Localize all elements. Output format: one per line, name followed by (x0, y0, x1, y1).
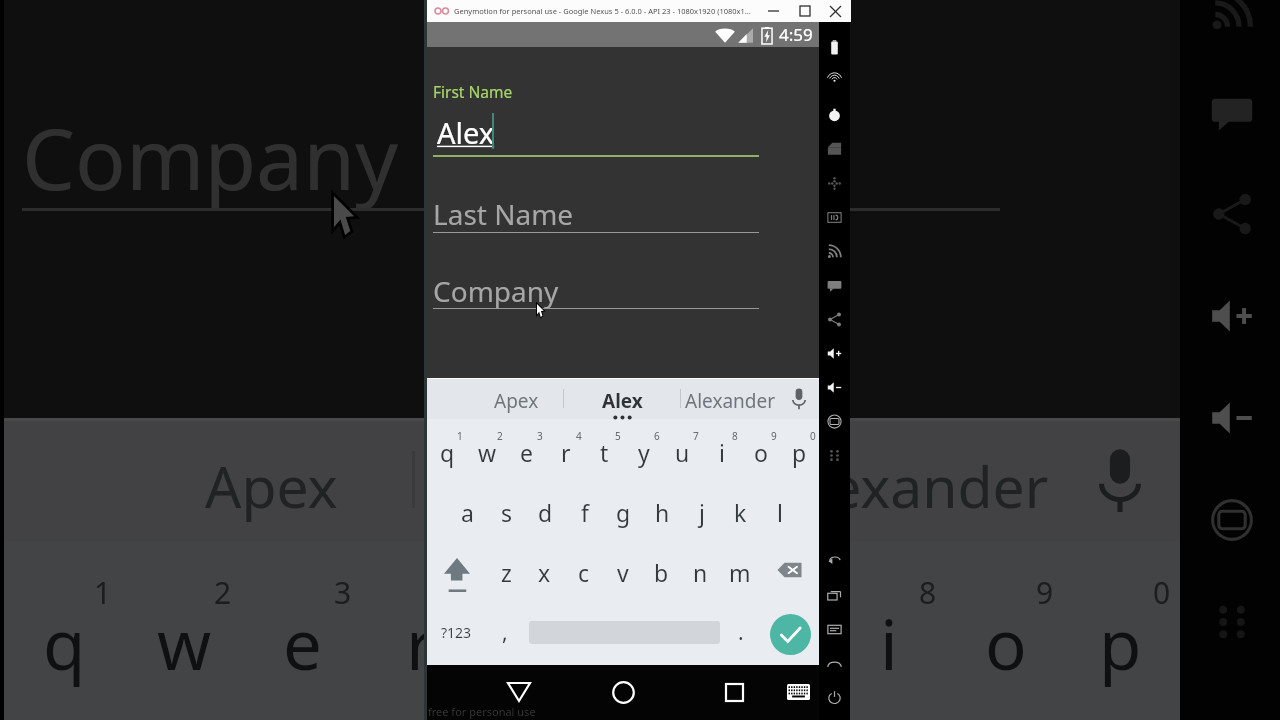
staticText: k (734, 497, 747, 528)
button[interactable]: 7 (712, 541, 829, 720)
button[interactable]: Voice input (779, 378, 819, 419)
button[interactable]: 4 (546, 419, 585, 479)
button[interactable]: GPS (819, 64, 850, 98)
button[interactable]: NET (819, 234, 850, 268)
staticText: c (578, 557, 590, 588)
button[interactable]: 7 (663, 419, 702, 479)
button[interactable]: 5 (478, 541, 595, 720)
staticText: 6 (685, 571, 703, 613)
button[interactable]: 9 (741, 419, 780, 479)
staticText: m (729, 557, 751, 588)
staticText: Company (433, 272, 559, 310)
button[interactable]: RECENT (819, 578, 850, 612)
staticText: p (1099, 595, 1144, 688)
staticText: y (637, 595, 673, 688)
button[interactable]: PIX (819, 438, 850, 472)
button[interactable]: ROTATE (819, 404, 850, 438)
button[interactable]: SMS (819, 268, 850, 302)
button[interactable]: SHARE (819, 302, 850, 336)
button[interactable]: 0 (1063, 541, 1180, 720)
staticText: 0 (810, 429, 816, 443)
button[interactable]: 2 (124, 541, 244, 720)
staticText: i (880, 595, 898, 688)
button[interactable]: l (760, 479, 799, 539)
button[interactable]: Enter (770, 614, 811, 655)
button[interactable]: f (565, 479, 604, 539)
button[interactable]: Show keyboard (781, 665, 815, 719)
button[interactable]: n (681, 539, 720, 599)
button[interactable]: 1 (4, 541, 124, 720)
button[interactable]: c (564, 539, 603, 599)
staticText: 4 (451, 571, 469, 613)
button[interactable]: 6 (595, 541, 712, 720)
button[interactable]: VOLDN (819, 370, 850, 404)
button[interactable]: Backspace (759, 539, 819, 599)
button[interactable]: Back (502, 665, 536, 719)
button[interactable]: k (721, 479, 760, 539)
button[interactable]: Minimize (758, 0, 789, 22)
button[interactable]: 1 (427, 419, 467, 479)
button[interactable]: Alex (563, 378, 680, 419)
button[interactable]: DISK (819, 132, 850, 166)
button[interactable]: b (642, 539, 681, 599)
button[interactable]: ID (819, 200, 850, 234)
button[interactable]: 8 (702, 419, 741, 479)
staticText: b (654, 557, 669, 588)
button[interactable]: 3 (244, 541, 361, 720)
button[interactable]: z (487, 539, 525, 599)
button[interactable]: d (526, 479, 565, 539)
button[interactable]: Recents (717, 665, 751, 719)
button[interactable]: x (525, 539, 564, 599)
button[interactable]: a (447, 479, 487, 539)
button[interactable]: Alexander (763, 418, 1090, 541)
button[interactable]: 4 (361, 541, 478, 720)
button[interactable]: VOLUP (819, 336, 850, 370)
button[interactable]: 0 (780, 419, 819, 479)
staticText: Alex (529, 448, 652, 526)
staticText: d (538, 497, 553, 528)
staticText: Company (22, 100, 400, 214)
button[interactable]: 3 (507, 419, 546, 479)
button[interactable]: 2 (467, 419, 507, 479)
button[interactable]: Space (525, 599, 724, 665)
staticText: 7 (802, 571, 820, 613)
staticText: 2 (214, 571, 232, 613)
button[interactable]: BATTERY (819, 30, 850, 64)
button[interactable]: Voice input (1060, 418, 1180, 541)
button[interactable]: Apex (4, 418, 412, 541)
button[interactable]: CAM (819, 98, 850, 132)
staticText: Genymotion for personal use - Google Nex… (454, 6, 751, 16)
staticText: t (600, 437, 609, 468)
button[interactable]: POWER (819, 680, 850, 714)
button[interactable]: Alex (412, 418, 763, 541)
button[interactable]: 6 (624, 419, 663, 479)
button[interactable]: . (724, 599, 757, 665)
button[interactable]: Apex (427, 378, 563, 419)
button[interactable]: Alexander (680, 378, 789, 419)
button[interactable]: Shift (427, 539, 487, 599)
staticText: Apex (494, 388, 539, 414)
staticText: Apex (205, 448, 340, 526)
button[interactable]: g (604, 479, 643, 539)
button[interactable]: s (487, 479, 526, 539)
button[interactable]: HOME (819, 646, 850, 680)
button[interactable]: Close (820, 0, 851, 22)
button[interactable]: MENU (819, 612, 850, 646)
button[interactable]: v (603, 539, 642, 599)
staticText: w (157, 595, 214, 688)
staticText: First Name (433, 81, 513, 102)
staticText: 5 (568, 571, 586, 613)
button[interactable]: j (682, 479, 721, 539)
button[interactable]: m (720, 539, 759, 599)
button[interactable]: 8 (829, 541, 946, 720)
button[interactable]: Maximize (789, 0, 820, 22)
button[interactable]: 5 (585, 419, 624, 479)
button[interactable]: DPAD (819, 166, 850, 200)
staticText: Alex (437, 113, 495, 152)
button[interactable]: ?123 (427, 599, 485, 665)
button[interactable]: BACK (819, 544, 850, 578)
button[interactable]: , (485, 599, 525, 665)
button[interactable]: h (643, 479, 682, 539)
button[interactable]: 9 (946, 541, 1063, 720)
button[interactable]: Home (606, 665, 640, 719)
